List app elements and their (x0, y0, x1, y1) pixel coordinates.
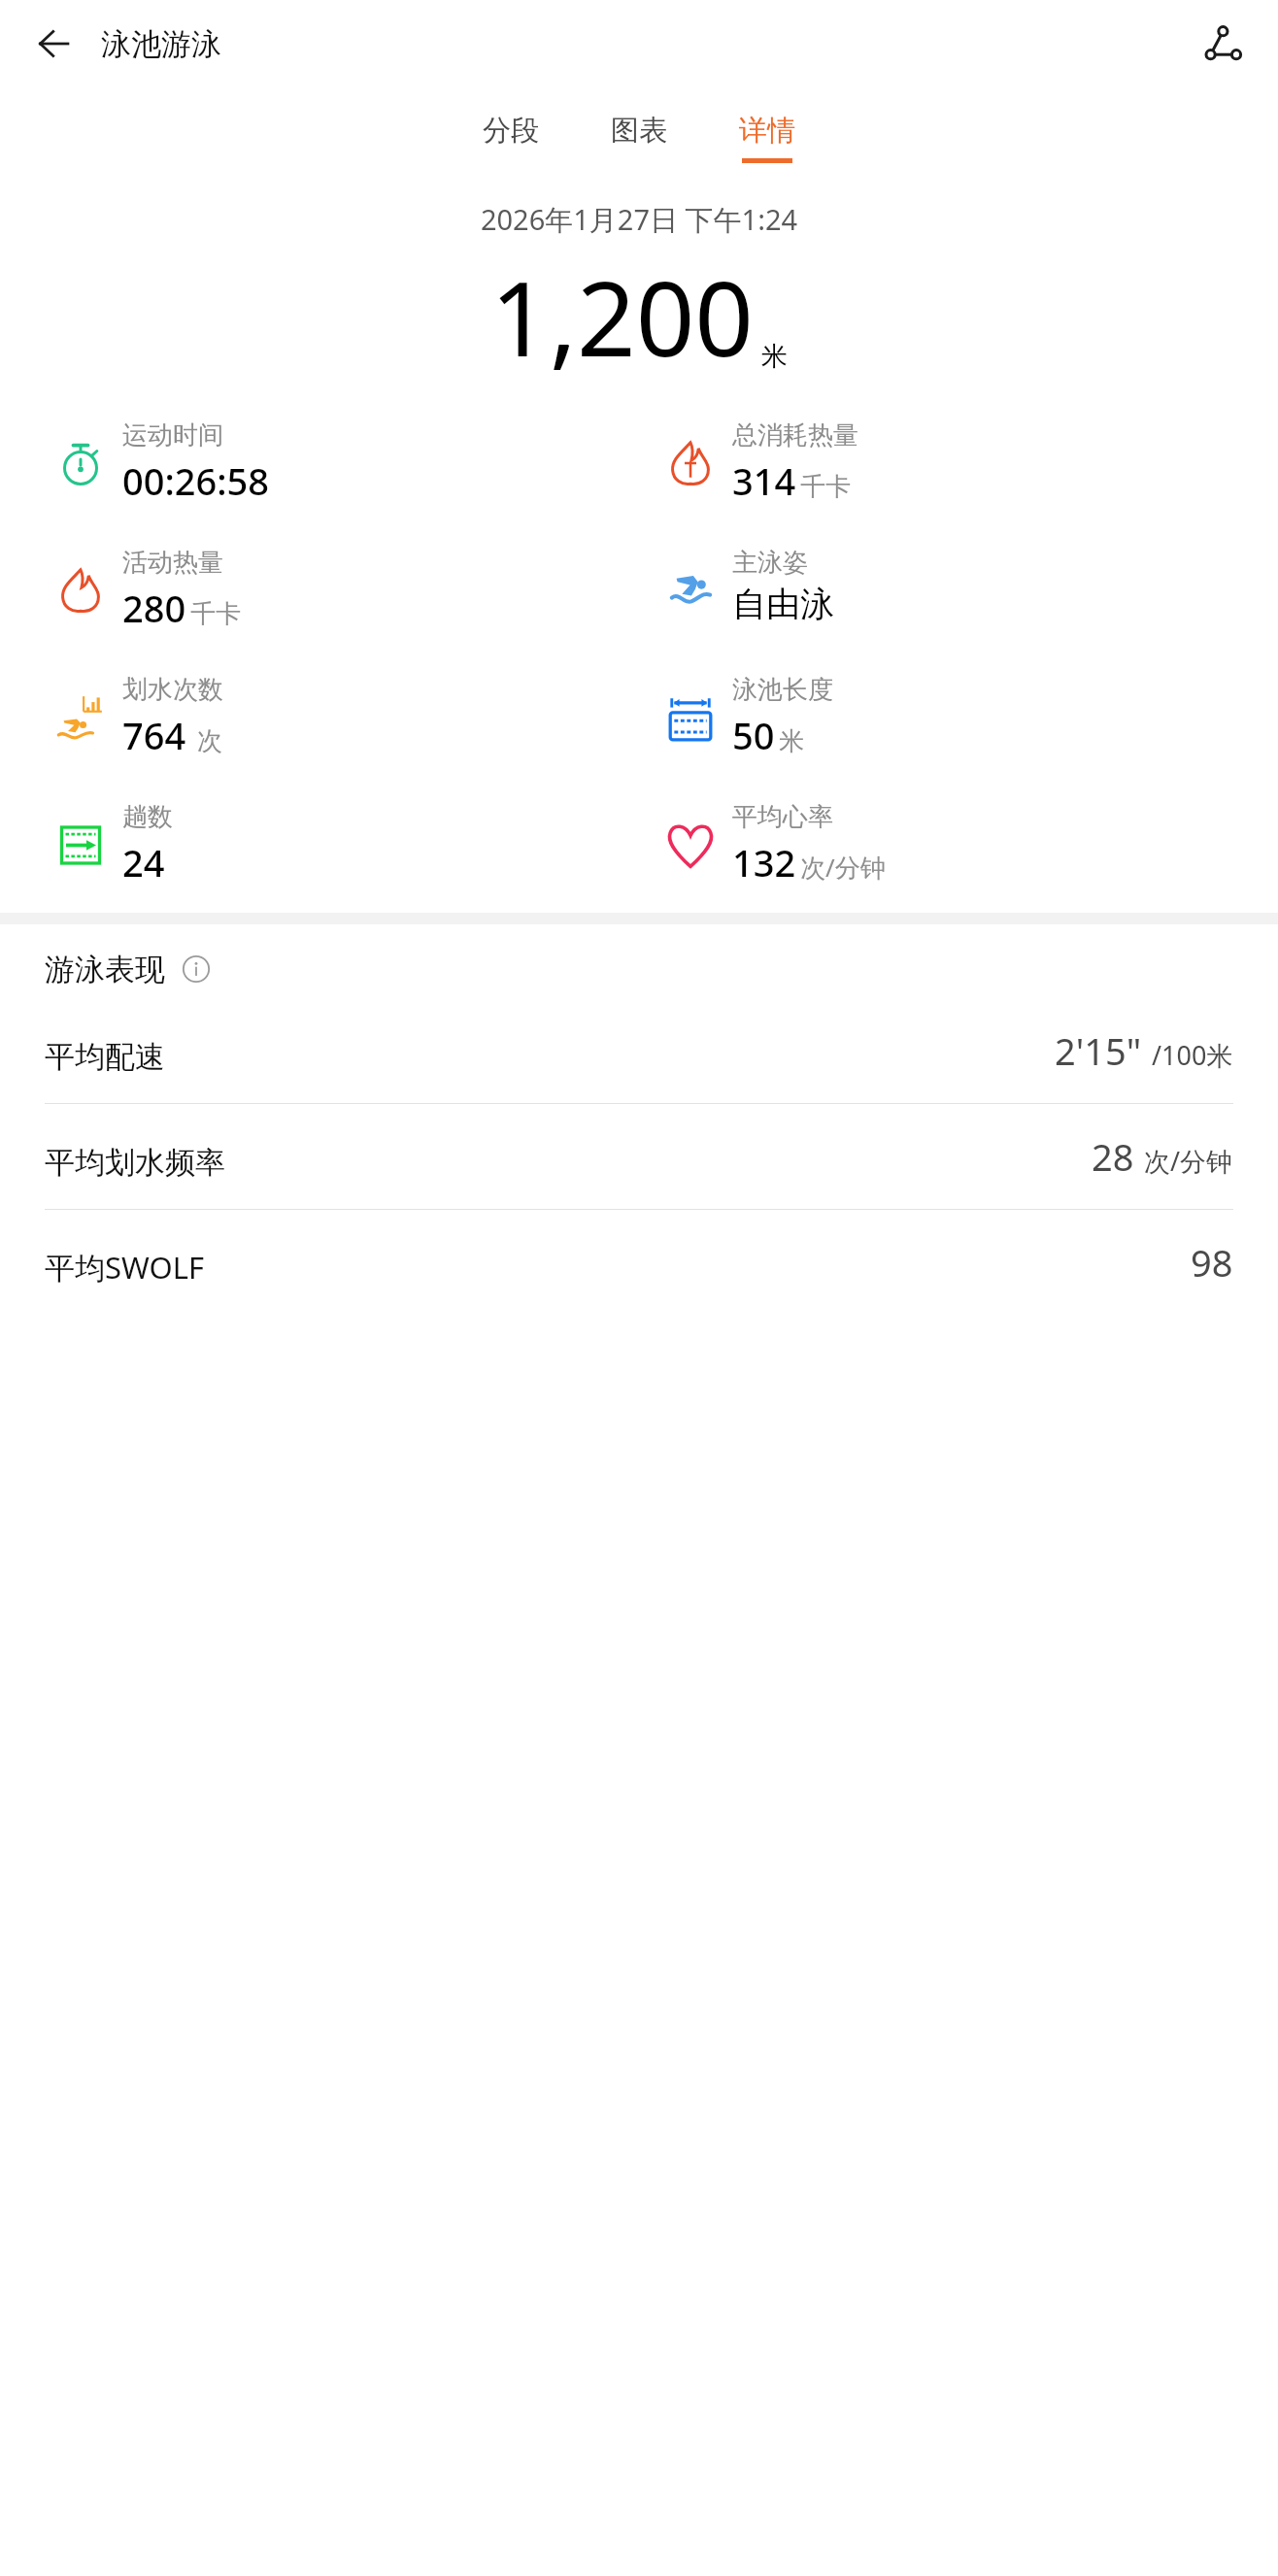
staticText: 米 (761, 340, 788, 373)
staticText: /100米 (1145, 1037, 1233, 1073)
staticText: 平均划水频率 (45, 1144, 225, 1182)
button[interactable]: 泳池长度 (660, 674, 833, 760)
button[interactable]: Back (25, 17, 80, 71)
staticText: 50 (732, 710, 775, 760)
button[interactable]: 运动时间 (50, 419, 270, 506)
staticText: 总消耗热量 (732, 419, 858, 452)
staticText: 泳池游泳 (101, 25, 221, 63)
staticText: 280 (122, 583, 186, 633)
staticText: 764 (122, 710, 186, 760)
staticText: 千卡 (190, 598, 241, 630)
button[interactable]: 分段 (467, 109, 555, 167)
button[interactable]: 图表 (595, 109, 683, 167)
staticText: 00:26:58 (122, 455, 270, 506)
button[interactable]: 趟数 (50, 801, 173, 887)
staticText: 次/分钟 (1137, 1143, 1233, 1179)
staticText: 次/分钟 (800, 850, 886, 885)
staticText: 自由泳 (732, 583, 834, 625)
button[interactable]: Share (1196, 16, 1253, 72)
staticText: 主泳姿 (732, 547, 808, 579)
staticText: 平均SWOLF (45, 1247, 205, 1288)
button[interactable]: 平均配速 (0, 998, 1278, 1103)
staticText: 活动热量 (122, 547, 223, 579)
staticText: 1,200 (490, 247, 754, 386)
staticText: 次 (190, 722, 222, 757)
button[interactable]: 详情 (723, 109, 811, 167)
staticText: 划水次数 (122, 674, 223, 706)
button[interactable]: 平均SWOLF (0, 1210, 1278, 1315)
button[interactable]: 平均划水频率 (0, 1104, 1278, 1209)
staticText: 泳池长度 (732, 674, 833, 706)
button[interactable]: 活动热量 (50, 547, 241, 633)
staticText: 千卡 (800, 471, 851, 503)
button[interactable]: 主泳姿 (660, 547, 834, 625)
staticText: 98 (1191, 1237, 1233, 1288)
button[interactable]: 平均心率 (660, 801, 886, 887)
staticText: 2026年1月27日 下午1:24 (0, 200, 1278, 239)
staticText: 132 (732, 837, 796, 887)
staticText: 平均心率 (732, 801, 833, 833)
staticText: 2'15" (1055, 1025, 1142, 1076)
staticText: 28 (1092, 1131, 1134, 1182)
staticText: 游泳表现 (45, 951, 165, 988)
staticText: 米 (779, 725, 804, 757)
staticText: 图表 (611, 113, 667, 149)
staticText: 分段 (483, 113, 539, 149)
staticText: 运动时间 (122, 419, 223, 452)
staticText: 平均配速 (45, 1038, 165, 1076)
staticText: 24 (122, 837, 165, 887)
button[interactable]: 划水次数 (50, 674, 223, 760)
staticText: 详情 (739, 113, 795, 149)
button[interactable]: Info (177, 950, 216, 988)
staticText: 趟数 (122, 801, 173, 833)
button[interactable]: 总消耗热量 (660, 419, 858, 506)
staticText: 314 (732, 455, 796, 506)
